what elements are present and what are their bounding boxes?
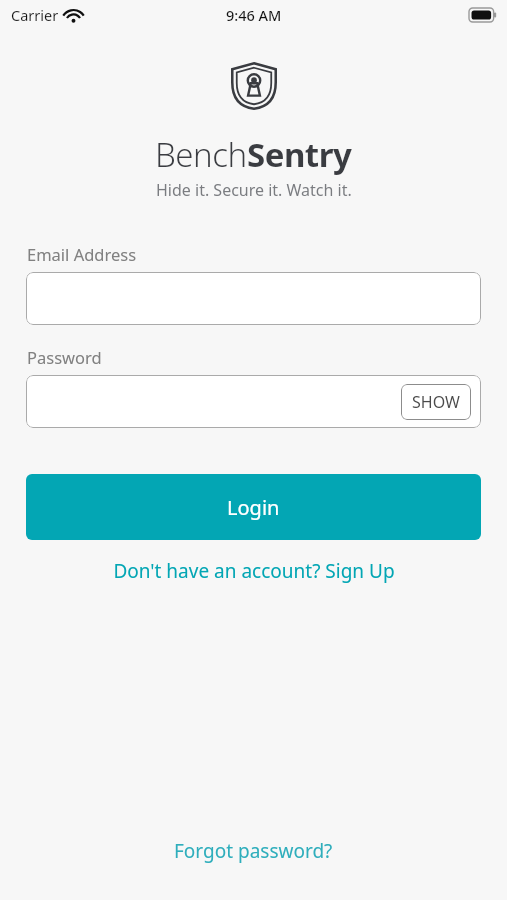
button[interactable]: Login (26, 474, 481, 540)
staticText: Login (227, 494, 280, 521)
staticText: Hide it. Secure it. Watch it. (156, 179, 352, 201)
button[interactable]: SHOW (401, 384, 471, 420)
staticText: SHOW (412, 391, 460, 413)
staticText: 9:46 AM (226, 5, 282, 25)
staticText: Forgot password? (174, 838, 333, 864)
staticText: Sentry (247, 132, 352, 177)
staticText: Email Address (27, 243, 137, 265)
button[interactable] (26, 272, 481, 325)
button[interactable]: Forgot password? (164, 833, 343, 869)
staticText: Bench (155, 132, 247, 177)
button[interactable]: SHOW (26, 375, 481, 428)
staticText: Carrier (11, 5, 59, 25)
staticText: Don't have an account? Sign Up (113, 558, 395, 584)
staticText: Password (27, 346, 102, 368)
button[interactable]: Don't have an account? Sign Up (105, 554, 403, 588)
